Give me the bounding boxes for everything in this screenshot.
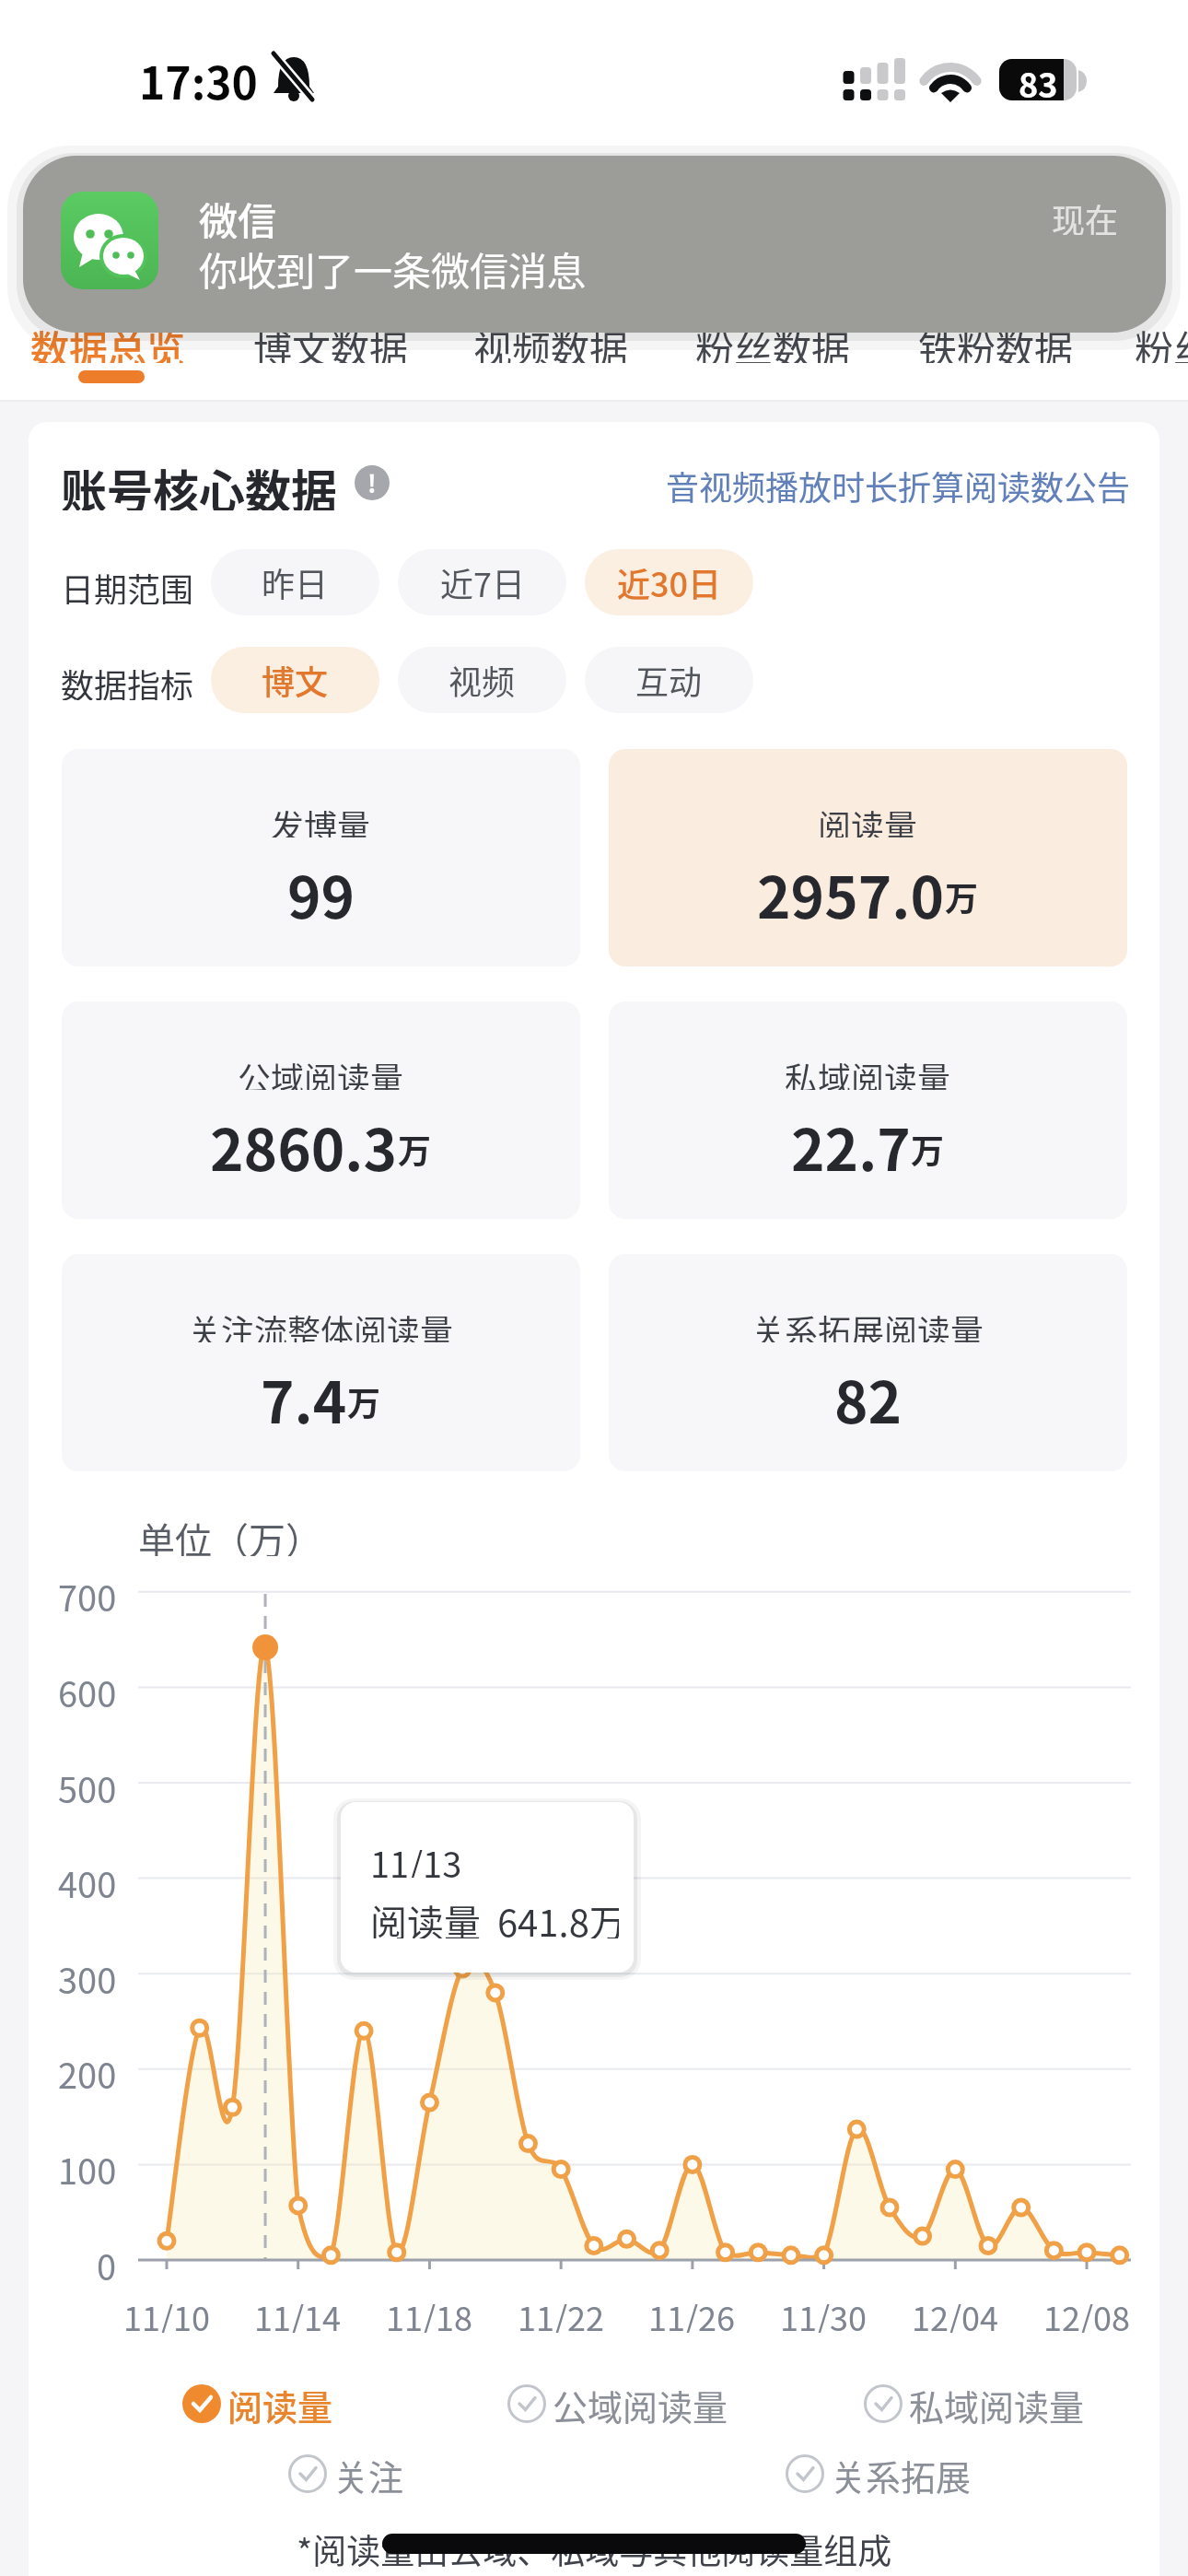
staticText: 发博量 xyxy=(271,801,371,837)
staticText: 万 xyxy=(398,1125,432,1173)
staticText: 600 xyxy=(58,1667,117,1707)
staticText: 视频数据 xyxy=(473,319,629,363)
staticText: 83 xyxy=(1019,59,1058,100)
button[interactable]: 视频数据 xyxy=(473,319,630,363)
button[interactable]: 关注 xyxy=(287,2450,416,2498)
button[interactable]: 微信 xyxy=(23,156,1166,333)
staticText: 400 xyxy=(58,1857,117,1898)
staticText: 视频 xyxy=(448,656,516,704)
button[interactable]: 阅读量 xyxy=(609,749,1127,966)
button[interactable]: 近7日 xyxy=(398,549,566,615)
button[interactable]: 博文 xyxy=(211,647,379,713)
staticText: 昨日 xyxy=(262,558,329,606)
staticText: 11/22 xyxy=(518,2292,605,2333)
staticText: 99 xyxy=(287,852,355,926)
staticText: 万 xyxy=(911,1125,945,1173)
staticText: 博文 xyxy=(262,656,329,704)
button[interactable]: 音视频播放时长折算阅读数公告 xyxy=(645,462,1131,504)
staticText: 铁粉数据 xyxy=(918,319,1074,363)
staticText: 单位（万） xyxy=(138,1512,322,1556)
staticText: 博文数据 xyxy=(253,319,409,363)
button[interactable]: 粉丝服务 xyxy=(1135,319,1188,363)
staticText: 11/26 xyxy=(648,2292,736,2333)
staticText: 关系拓展 xyxy=(831,2450,972,2498)
button[interactable]: 数据总览 xyxy=(30,319,187,363)
staticText: 私域阅读量 xyxy=(909,2380,1085,2428)
staticText: 阅读量 xyxy=(227,2380,333,2428)
staticText: 0 xyxy=(97,2240,117,2280)
button[interactable]: 公域阅读量 xyxy=(62,1001,580,1219)
button[interactable]: 粉丝数据 xyxy=(695,319,852,363)
staticText: 12/08 xyxy=(1043,2292,1131,2333)
staticText: 22.7 xyxy=(791,1105,911,1178)
staticText: 关注 xyxy=(333,2450,404,2498)
staticText: 7.4 xyxy=(261,1357,347,1431)
staticText: 私域阅读量 xyxy=(785,1053,951,1090)
staticText: 500 xyxy=(58,1762,117,1803)
button[interactable]: 视频 xyxy=(398,647,566,713)
staticText: 11/30 xyxy=(780,2292,868,2333)
staticText: 阅读量 641.8万 xyxy=(370,1894,619,1938)
staticText: 2860.3 xyxy=(210,1105,398,1178)
button[interactable]: 互动 xyxy=(585,647,753,713)
button[interactable]: 关注流整体阅读量 xyxy=(62,1254,580,1471)
staticText: 100 xyxy=(58,2144,117,2184)
staticText: 粉丝服务 xyxy=(1135,319,1188,363)
staticText: 音视频播放时长折算阅读数公告 xyxy=(666,462,1131,504)
button[interactable]: ! xyxy=(355,465,390,500)
button[interactable]: 近30日 xyxy=(585,549,753,615)
staticText: 微信 xyxy=(199,191,277,239)
staticText: 200 xyxy=(58,2048,117,2089)
button[interactable]: 铁粉数据 xyxy=(918,319,1075,363)
button[interactable]: 关系拓展 xyxy=(785,2450,987,2498)
button[interactable]: 博文数据 xyxy=(253,319,410,363)
staticText: 日期范围 xyxy=(61,564,194,604)
staticText: 82 xyxy=(834,1357,903,1431)
staticText: 12/04 xyxy=(912,2292,999,2333)
staticText: ! xyxy=(367,465,377,500)
staticText: 关注流整体阅读量 xyxy=(188,1306,454,1342)
button[interactable]: 私域阅读量 xyxy=(609,1001,1127,1219)
staticText: 万 xyxy=(347,1377,381,1425)
staticText: 11/18 xyxy=(386,2292,473,2333)
staticText: 11/14 xyxy=(254,2292,342,2333)
staticText: *阅读量由公域、私域与其他阅读量组成 xyxy=(297,2524,892,2569)
button[interactable]: 公域阅读量 xyxy=(507,2380,746,2428)
button[interactable]: 关系拓展阅读量 xyxy=(609,1254,1127,1471)
staticText: 近30日 xyxy=(617,558,722,606)
staticText: 近7日 xyxy=(440,558,525,606)
staticText: 你收到了一条微信消息 xyxy=(199,240,587,290)
button[interactable]: 昨日 xyxy=(211,549,379,615)
button[interactable]: 阅读量 xyxy=(181,2380,347,2428)
staticText: 万 xyxy=(945,872,979,920)
staticText: 数据总览 xyxy=(30,319,186,363)
staticText: 数据指标 xyxy=(61,660,194,700)
staticText: 700 xyxy=(58,1571,117,1611)
staticText: 公域阅读量 xyxy=(238,1053,404,1090)
staticText: 11/10 xyxy=(123,2292,211,2333)
staticText: 现在 xyxy=(1052,194,1119,235)
staticText: 粉丝数据 xyxy=(695,319,851,363)
staticText: 公域阅读量 xyxy=(553,2380,728,2428)
staticText: 关系拓展阅读量 xyxy=(751,1306,984,1342)
staticText: 账号核心数据 xyxy=(61,455,337,510)
staticText: 互动 xyxy=(635,656,703,704)
button[interactable]: 发博量 xyxy=(62,749,580,966)
staticText: 11/13 xyxy=(370,1837,462,1878)
staticText: 17:30 xyxy=(139,48,258,103)
button[interactable]: 私域阅读量 xyxy=(863,2380,1102,2428)
staticText: 2957.0 xyxy=(757,852,945,926)
staticText: 阅读量 xyxy=(818,801,918,837)
staticText: 300 xyxy=(58,1953,117,1994)
